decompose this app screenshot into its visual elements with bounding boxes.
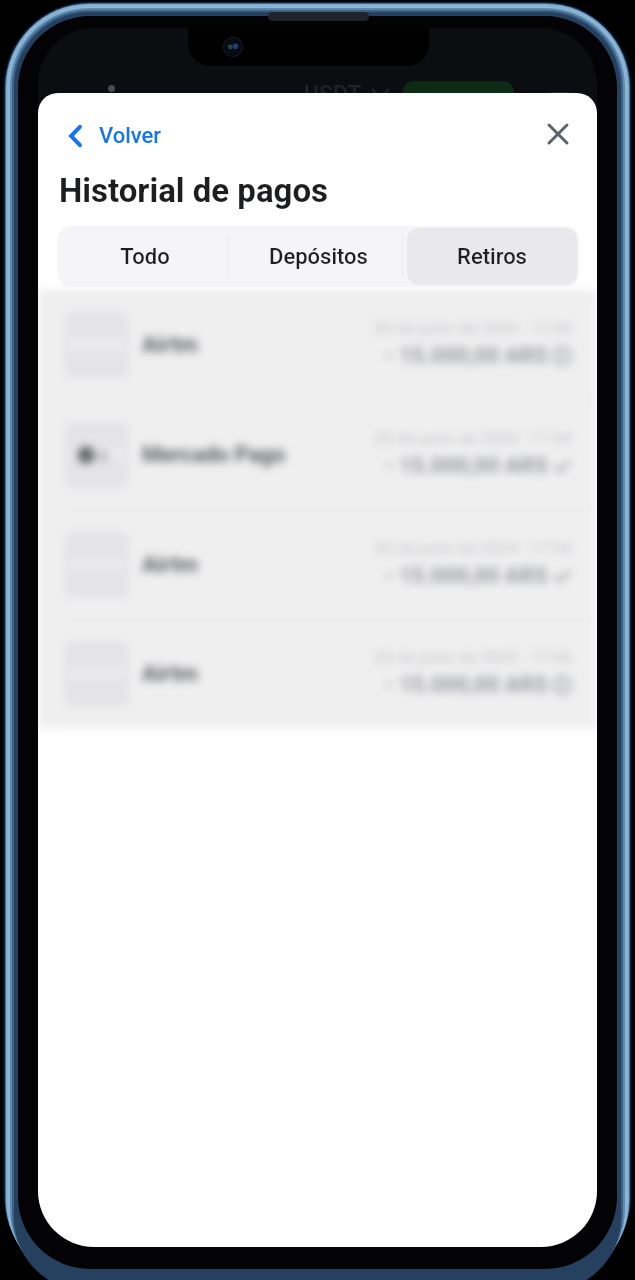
button[interactable]: Volver — [65, 118, 166, 154]
staticText: Todo — [120, 244, 170, 270]
staticText: USDT — [304, 81, 362, 108]
button[interactable]: Airtm — [38, 510, 597, 620]
staticText: - 15.000,00 ARS — [385, 453, 548, 479]
staticText: Historial de pagos — [59, 171, 329, 210]
staticText: - 15.000,00 ARS — [385, 563, 548, 589]
button[interactable]: Airtm — [38, 290, 597, 400]
staticText: Mercado Pago — [142, 442, 286, 468]
button[interactable]: Depósitos — [233, 228, 403, 285]
button[interactable]: Cerrar — [538, 114, 578, 154]
staticText: - 15.000,00 ARS — [385, 672, 548, 698]
staticText: Airtm — [142, 552, 198, 578]
staticText: Depósitos — [269, 244, 368, 270]
button[interactable]: Airtm — [38, 620, 597, 728]
staticText: Retiros — [457, 244, 527, 270]
staticText: Airtm — [142, 661, 198, 687]
staticText: - 15.000,00 ARS — [385, 343, 548, 369]
staticText: Airtm — [142, 332, 198, 358]
button[interactable]: Mercado Pago — [38, 400, 597, 510]
staticText: Volver — [99, 123, 162, 149]
button[interactable]: Todo — [60, 228, 229, 285]
button[interactable]: Retiros — [407, 228, 577, 285]
